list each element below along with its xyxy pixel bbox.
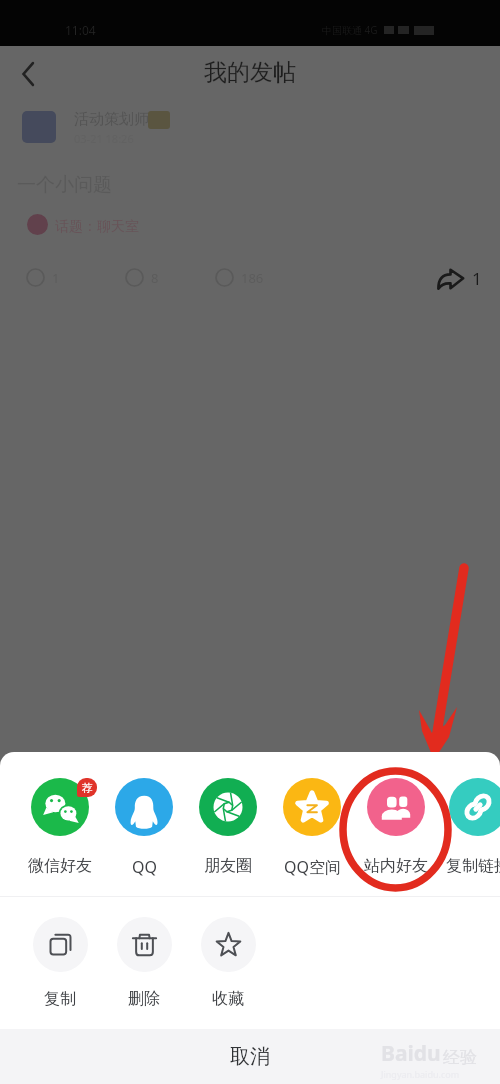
staticText: 站内好友 bbox=[364, 856, 428, 876]
button[interactable]: 朋友圈 bbox=[186, 778, 270, 876]
button[interactable]: 复制 bbox=[18, 917, 102, 1009]
button[interactable]: QQ bbox=[102, 778, 186, 878]
staticText: 朋友圈 bbox=[204, 856, 252, 876]
staticText: 11:04 bbox=[65, 22, 96, 38]
staticText: Baidu bbox=[381, 1039, 441, 1068]
staticText: 1 bbox=[472, 267, 482, 290]
button[interactable]: Back bbox=[8, 54, 48, 94]
button[interactable]: Action bbox=[125, 268, 159, 287]
staticText: QQ空间 bbox=[284, 856, 341, 878]
staticText: 取消 bbox=[230, 1044, 270, 1069]
button[interactable]: 荐 bbox=[18, 778, 102, 876]
staticText: 复制链接 bbox=[446, 856, 500, 876]
staticText: 我的发帖 bbox=[204, 58, 296, 87]
button[interactable]: Share bbox=[437, 267, 482, 290]
button[interactable]: QQ空间 bbox=[270, 778, 354, 878]
staticText: 微信好友 bbox=[28, 856, 92, 876]
button[interactable]: Action bbox=[26, 268, 60, 287]
staticText: 删除 bbox=[128, 989, 160, 1009]
button[interactable]: 取消 bbox=[0, 1029, 500, 1084]
staticText: 中国联通 4G bbox=[322, 23, 378, 37]
staticText: 经验 bbox=[443, 1047, 477, 1068]
staticText: 8 bbox=[151, 269, 159, 287]
button[interactable]: 复制链接 bbox=[438, 778, 500, 876]
staticText: 活动策划师 bbox=[74, 110, 149, 129]
button[interactable]: 收藏 bbox=[186, 917, 270, 1009]
staticText: 收藏 bbox=[212, 989, 244, 1009]
staticText: 话题：聊天室 bbox=[55, 218, 139, 236]
button[interactable]: 站内好友 bbox=[354, 778, 438, 876]
button[interactable]: Action bbox=[215, 268, 264, 287]
staticText: QQ bbox=[132, 856, 157, 878]
staticText: 荐 bbox=[82, 781, 93, 795]
button[interactable]: 删除 bbox=[102, 917, 186, 1009]
staticText: 一个小问题 bbox=[17, 173, 112, 197]
staticText: 复制 bbox=[44, 989, 76, 1009]
